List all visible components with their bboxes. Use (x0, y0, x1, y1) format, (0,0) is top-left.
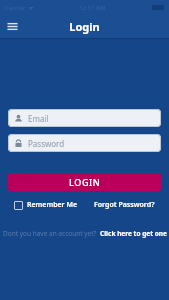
other: Email (14, 114, 23, 123)
staticText: Email (28, 113, 49, 124)
staticText: LOGIN (69, 176, 101, 188)
staticText: Carrier (5, 4, 26, 12)
staticText: Dont you have an account yet? (3, 229, 97, 238)
button[interactable]: Password (8, 134, 161, 152)
button[interactable]: Click here to get one (100, 229, 167, 238)
staticText: 12:11 AM (79, 4, 106, 12)
button[interactable]: LOGIN (8, 173, 161, 191)
button[interactable]: Email (8, 109, 161, 127)
button[interactable]: Remember Me (14, 200, 78, 210)
staticText: Password (28, 138, 65, 149)
staticText: Login (69, 19, 100, 34)
button[interactable]: Forgot Password? (94, 200, 155, 210)
button[interactable]: Menu (4, 18, 21, 35)
other: Password (14, 139, 23, 148)
staticText: Remember Me (27, 200, 78, 210)
